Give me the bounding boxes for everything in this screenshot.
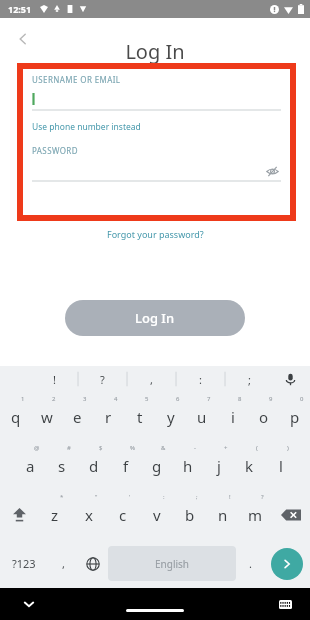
button[interactable]: b [173, 490, 206, 539]
staticText: z [51, 505, 59, 525]
staticText: . [249, 556, 252, 571]
staticText: : [163, 493, 165, 501]
button[interactable] [32, 93, 281, 111]
staticText: , [62, 556, 65, 571]
button[interactable]: m [239, 490, 272, 539]
button[interactable]: d [78, 441, 110, 490]
button[interactable]: h [172, 441, 203, 490]
button[interactable]: a [14, 441, 46, 490]
staticText: b [185, 505, 195, 525]
staticText: , [150, 372, 153, 387]
staticText: 12:51 [8, 3, 32, 15]
staticText: e [73, 407, 82, 427]
button[interactable]: j [203, 441, 234, 490]
button[interactable]: ; [225, 366, 274, 392]
button[interactable]: Back [8, 24, 38, 54]
staticText: a [26, 456, 35, 476]
button[interactable]: , [127, 366, 176, 392]
button[interactable]: . [236, 539, 264, 588]
staticText: # [67, 444, 71, 452]
button[interactable]: Switch keyboard [274, 593, 296, 615]
staticText: m [248, 505, 263, 525]
button[interactable]: f [110, 441, 141, 490]
staticText: y [167, 407, 175, 427]
button[interactable]: Hide keyboard [18, 593, 40, 615]
button[interactable]: s [46, 441, 78, 490]
button[interactable]: k [234, 441, 265, 490]
button[interactable]: Show password [32, 160, 281, 182]
button[interactable]: English [108, 546, 236, 581]
button[interactable]: u [186, 392, 217, 441]
button[interactable]: i [217, 392, 248, 441]
button[interactable]: ? [78, 366, 127, 392]
staticText: 4 [114, 395, 118, 403]
button[interactable]: Use phone number instead [32, 121, 141, 133]
button[interactable]: p [279, 392, 310, 441]
button[interactable]: Show password [263, 162, 281, 180]
staticText: English [155, 557, 190, 571]
button[interactable]: t [124, 392, 155, 441]
staticText: - [194, 444, 196, 452]
button[interactable]: n [206, 490, 239, 539]
button[interactable]: o [248, 392, 279, 441]
staticText: 3 [83, 395, 87, 403]
button[interactable]: l [265, 441, 296, 490]
button[interactable]: ! [30, 366, 78, 392]
staticText: 1 [21, 395, 25, 403]
staticText: ?123 [12, 556, 36, 571]
button[interactable]: Enter [271, 548, 303, 580]
button[interactable]: c [106, 490, 140, 539]
button[interactable]: x [72, 490, 106, 539]
staticText: v [153, 505, 161, 525]
button[interactable]: Voice input [280, 369, 300, 389]
staticText: ; [248, 372, 251, 387]
staticText: ! [53, 372, 56, 387]
button[interactable]: r [93, 392, 124, 441]
button[interactable]: q [0, 392, 31, 441]
button[interactable]: : [176, 366, 225, 392]
staticText: j [217, 456, 221, 476]
button[interactable]: ?123 [0, 539, 48, 588]
staticText: ; [196, 493, 198, 501]
button[interactable]: Shift [0, 490, 38, 539]
staticText: PASSWORD [32, 145, 78, 156]
button[interactable]: z [38, 490, 72, 539]
button[interactable]: v [140, 490, 173, 539]
button[interactable]: Change language [78, 539, 108, 588]
staticText: : [199, 372, 202, 387]
button[interactable]: Forgot your password? [107, 228, 204, 240]
button[interactable]: y [155, 392, 186, 441]
staticText: + [224, 444, 228, 452]
button[interactable]: g [141, 441, 172, 490]
staticText: 8 [238, 395, 242, 403]
staticText: $ [99, 444, 103, 452]
staticText: ( [256, 444, 258, 452]
staticText: 2 [52, 395, 56, 403]
staticText: r [105, 407, 112, 427]
staticText: % [130, 444, 135, 452]
staticText: 6 [176, 395, 180, 403]
staticText: 5 [145, 395, 149, 403]
button[interactable]: , [48, 539, 78, 588]
staticText: ? [100, 372, 105, 387]
staticText: l [279, 456, 283, 476]
staticText: s [58, 456, 66, 476]
staticText: q [11, 407, 21, 427]
staticText: ? [261, 493, 264, 501]
staticText: Use phone number instead [32, 121, 141, 133]
button[interactable]: Backspace [272, 490, 310, 539]
staticText: o [259, 407, 269, 427]
staticText: * [60, 493, 64, 501]
staticText: @ [34, 444, 40, 452]
staticText: ' [129, 493, 131, 501]
button[interactable]: w [31, 392, 62, 441]
staticText: u [197, 407, 207, 427]
button[interactable] [126, 609, 184, 612]
staticText: k [245, 456, 254, 476]
staticText: Log In [135, 309, 175, 327]
staticText: p [290, 407, 300, 427]
staticText: g [152, 456, 162, 476]
button[interactable]: e [62, 392, 93, 441]
button[interactable]: Log In [65, 300, 245, 336]
staticText: Forgot your password? [107, 228, 204, 240]
